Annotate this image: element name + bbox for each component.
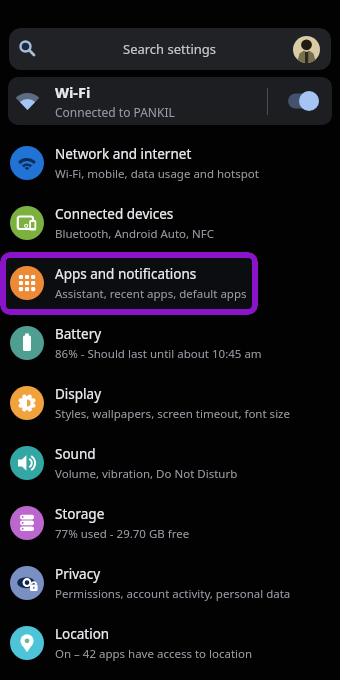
button[interactable]: Wi-Fi [8,77,332,125]
staticText: 77% used - 29.70 GB free [55,526,190,542]
button[interactable]: Privacy [0,553,340,613]
staticText: Bluetooth, Android Auto, NFC [55,226,215,242]
button[interactable]: Apps and notifications [0,253,340,313]
staticText: Wi-Fi [55,82,91,102]
staticText: Network and internet [55,145,192,163]
button[interactable]: Search settings [9,28,331,70]
staticText: Privacy [55,565,101,583]
button[interactable]: Storage [0,493,340,553]
button[interactable]: Network and internet [0,133,340,193]
staticText: Battery [55,325,102,343]
staticText: Wi-Fi, mobile, data usage and hotspot [55,166,259,182]
staticText: Storage [55,505,105,523]
staticText: Apps and notifications [55,265,197,283]
staticText: Display [55,385,102,403]
staticText: Connected to PANKIL [55,104,175,120]
staticText: Search settings [123,40,217,58]
staticText: Assistant, recent apps, default apps [55,286,247,302]
button[interactable]: Location [0,613,340,673]
staticText: On – 42 apps have access to location [55,646,253,662]
button[interactable]: Battery [0,313,340,373]
button[interactable]: Connected devices [0,193,340,253]
staticText: Location [55,625,110,643]
staticText: Volume, vibration, Do Not Disturb [55,466,238,482]
staticText: Permissions, account activity, personal … [55,586,291,602]
staticText: Connected devices [55,205,174,223]
staticText: 86% - Should last until about 10:45 am [55,346,262,362]
button[interactable]: Sound [0,433,340,493]
staticText: Sound [55,445,96,463]
staticText: Styles, wallpapers, screen timeout, font… [55,406,290,422]
button[interactable]: Display [0,373,340,433]
